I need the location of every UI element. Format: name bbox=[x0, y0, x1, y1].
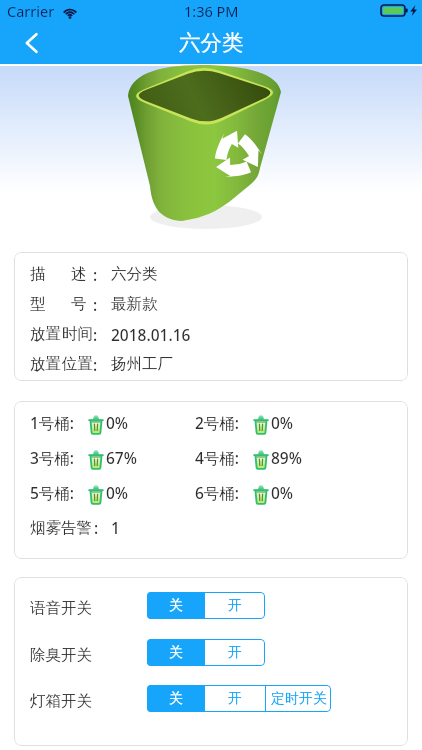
staticText: 定时开关 bbox=[271, 690, 327, 708]
staticText: 67% bbox=[106, 447, 137, 468]
staticText: 放置 bbox=[30, 354, 61, 374]
staticText: 关 bbox=[169, 690, 183, 708]
staticText: 最新款 bbox=[111, 294, 158, 314]
staticText: 灯箱开关 bbox=[30, 691, 92, 711]
staticText: 6号桶: bbox=[195, 482, 240, 503]
staticText: 放置 bbox=[30, 324, 61, 344]
button[interactable]: 关 bbox=[147, 639, 205, 666]
staticText: 0% bbox=[106, 412, 129, 433]
button[interactable]: 关 bbox=[147, 685, 205, 712]
staticText: 描 bbox=[30, 264, 46, 284]
button[interactable]: 开 bbox=[205, 592, 265, 619]
staticText: 0% bbox=[271, 482, 294, 503]
staticText: 型 bbox=[30, 294, 46, 314]
staticText: : bbox=[93, 354, 98, 375]
staticText: 1:36 PM bbox=[184, 1, 239, 21]
staticText: 1 bbox=[111, 517, 120, 538]
button[interactable]: 开 bbox=[205, 639, 265, 666]
button[interactable]: 关 bbox=[147, 592, 205, 619]
staticText: 六分类 bbox=[179, 29, 244, 56]
staticText: 0% bbox=[271, 412, 294, 433]
staticText: 开 bbox=[228, 644, 242, 662]
staticText: : bbox=[93, 294, 98, 315]
staticText: Carrier bbox=[7, 1, 55, 21]
staticText: 5号桶: bbox=[30, 482, 75, 503]
staticText: 述 bbox=[71, 264, 87, 284]
button[interactable]: 定时开关 bbox=[266, 685, 331, 712]
staticText: 时间 bbox=[62, 324, 93, 344]
staticText: 关 bbox=[169, 597, 183, 615]
staticText: 号 bbox=[71, 294, 87, 314]
staticText: 位置 bbox=[62, 354, 93, 374]
staticText: 扬州工厂 bbox=[111, 354, 173, 374]
staticText: 烟雾告警 bbox=[30, 518, 92, 538]
staticText: : bbox=[94, 517, 99, 538]
staticText: 1号桶: bbox=[30, 412, 75, 433]
staticText: : bbox=[93, 264, 98, 285]
button[interactable]: Back bbox=[14, 26, 48, 60]
button[interactable]: 开 bbox=[205, 685, 265, 712]
staticText: 3号桶: bbox=[30, 447, 75, 468]
staticText: 4号桶: bbox=[195, 447, 240, 468]
staticText: 开 bbox=[228, 597, 242, 615]
staticText: 语音开关 bbox=[30, 598, 92, 618]
staticText: 六分类 bbox=[111, 264, 158, 284]
staticText: 89% bbox=[271, 447, 302, 468]
staticText: 2018.01.16 bbox=[111, 324, 191, 345]
staticText: 关 bbox=[169, 644, 183, 662]
staticText: : bbox=[93, 324, 98, 345]
staticText: 0% bbox=[106, 482, 129, 503]
staticText: 除臭开关 bbox=[30, 645, 92, 665]
staticText: 2号桶: bbox=[195, 412, 240, 433]
staticText: 开 bbox=[228, 690, 242, 708]
